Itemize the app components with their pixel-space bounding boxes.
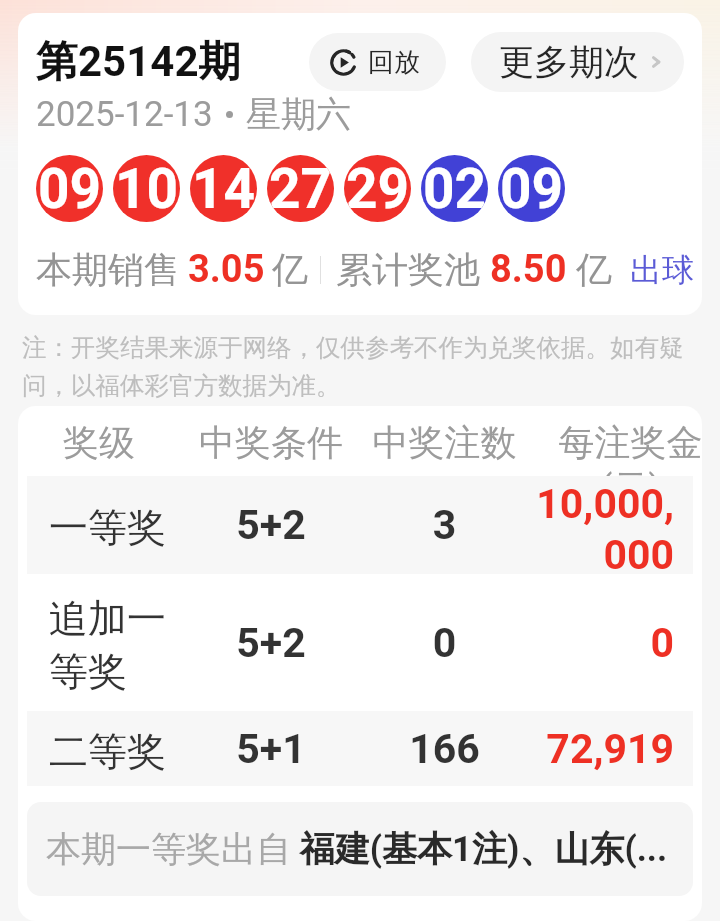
staticText: 166 xyxy=(371,725,518,773)
staticText: 更多期次 xyxy=(499,40,639,84)
staticText: 09 xyxy=(500,157,564,221)
staticText: 中奖注数 xyxy=(371,420,518,465)
staticText: 本期销售 xyxy=(36,247,180,292)
staticText: 追加一 等奖 xyxy=(49,594,171,696)
staticText: 5+1 xyxy=(171,725,371,773)
staticText: 2025-12-13 xyxy=(36,94,213,135)
staticText: 0 xyxy=(518,619,674,667)
staticText: 每注奖金 (元) xyxy=(543,420,702,476)
staticText: 02 xyxy=(423,157,487,221)
staticText: 一等奖 xyxy=(49,503,171,552)
staticText: 注：开奖结果来源于网络，仅供参考不作为兑奖依据。如有疑问，以福体彩官方数据为准。 xyxy=(22,332,704,401)
staticText: 14 xyxy=(192,157,256,221)
staticText: 回放 xyxy=(368,46,420,79)
staticText: 本期一等奖出自 福建(基本1注)、山东(... xyxy=(46,827,668,871)
staticText: 3.05 xyxy=(188,247,265,292)
staticText: 奖级 xyxy=(27,420,171,465)
staticText: 星期六 xyxy=(246,92,351,136)
staticText: 亿 xyxy=(576,247,612,292)
staticText: 累计奖池 xyxy=(336,247,480,292)
staticText: 09 xyxy=(38,157,102,221)
staticText: 0 xyxy=(371,619,518,667)
staticText: 8.50 xyxy=(490,247,567,292)
staticText: 10,000, 000 xyxy=(518,480,674,574)
staticText: 亿 xyxy=(272,247,308,292)
button[interactable]: 出球 xyxy=(630,250,694,290)
staticText: 5+2 xyxy=(171,501,371,549)
staticText: 二等奖 xyxy=(49,727,171,776)
staticText: 29 xyxy=(346,157,410,221)
staticText: 5+2 xyxy=(171,619,371,667)
staticText: 72,919 xyxy=(518,725,674,773)
staticText: 第25142期 xyxy=(36,36,241,89)
button[interactable]: 回放 xyxy=(309,33,446,91)
staticText: 27 xyxy=(269,157,333,221)
staticText: 中奖条件 xyxy=(171,420,371,465)
button[interactable]: 本期一等奖出自 福建(基本1注)、山东(... xyxy=(27,802,693,896)
staticText: 10 xyxy=(115,157,179,221)
staticText: 3 xyxy=(371,501,518,549)
button[interactable]: 更多期次 xyxy=(471,32,684,92)
